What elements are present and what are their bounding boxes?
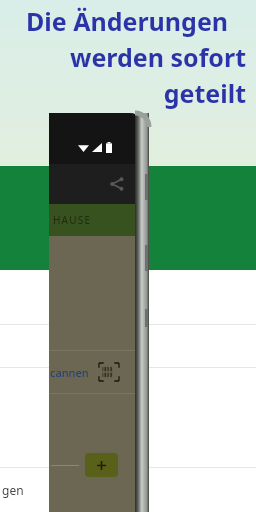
button[interactable]	[0, 166, 256, 270]
staticText: HAUSE	[53, 213, 92, 227]
button[interactable]	[0, 325, 256, 368]
button[interactable]	[0, 368, 256, 468]
button[interactable]: Hinzufügen	[85, 453, 118, 477]
staticText: werden sofort	[8, 40, 246, 74]
button[interactable]: HAUSE	[49, 204, 149, 236]
staticText: gen	[2, 482, 24, 498]
button[interactable]	[0, 270, 256, 325]
staticText: Die Änderungen	[8, 4, 246, 38]
button[interactable]: cannen	[49, 351, 149, 393]
button[interactable]: gen	[0, 468, 256, 512]
button[interactable]: Teilen	[106, 173, 128, 195]
staticText: geteilt	[8, 76, 246, 110]
staticText: cannen	[50, 365, 89, 380]
